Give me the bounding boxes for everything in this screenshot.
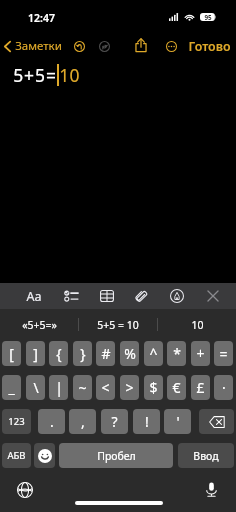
button[interactable]: } [73, 341, 92, 366]
button[interactable]: Заметки [0, 33, 66, 59]
button[interactable]: · [214, 375, 233, 400]
button[interactable]: % [120, 341, 139, 366]
staticText: + [196, 344, 205, 363]
staticText: · [222, 378, 226, 397]
staticText: 10 [191, 318, 204, 332]
staticText: = [219, 344, 228, 363]
staticText: 12:47 [28, 11, 55, 25]
button[interactable]: Format [19, 283, 49, 309]
staticText: [ [9, 344, 14, 363]
button[interactable]: Table [92, 283, 122, 309]
button[interactable]: More [160, 35, 182, 57]
button[interactable]: € [167, 375, 186, 400]
staticText: > [125, 378, 134, 397]
button[interactable]: _ [2, 375, 21, 400]
button[interactable]: \ [26, 375, 45, 400]
button[interactable]: Share [130, 34, 152, 56]
staticText: 5+5= [13, 63, 57, 87]
button[interactable]: Пробел [59, 443, 173, 468]
button[interactable]: 123 [2, 409, 31, 434]
staticText: Заметки [15, 38, 62, 54]
button[interactable]: [ [2, 341, 21, 366]
button[interactable]: АБВ [2, 443, 31, 468]
staticText: 123 [8, 415, 25, 428]
staticText: 95 [204, 13, 212, 21]
staticText: Ввод [193, 449, 219, 463]
button[interactable]: ? [101, 409, 128, 434]
staticText: ' [176, 412, 180, 431]
button[interactable]: 10 [158, 309, 236, 340]
button[interactable]: { [49, 341, 68, 366]
button[interactable]: ^ [144, 341, 163, 366]
button[interactable]: , [69, 409, 96, 434]
staticText: * [173, 344, 181, 363]
staticText: { [56, 344, 62, 363]
staticText: % [124, 344, 136, 363]
button[interactable]: $ [144, 375, 163, 400]
button[interactable]: Redo [93, 35, 115, 57]
button[interactable]: Close [198, 283, 228, 309]
staticText: . [50, 412, 54, 431]
button[interactable]: < [96, 375, 115, 400]
staticText: } [80, 344, 86, 363]
staticText: < [101, 378, 110, 397]
button[interactable]: £ [191, 375, 210, 400]
staticText: $ [149, 378, 158, 397]
staticText: , [81, 412, 85, 431]
staticText: € [172, 378, 181, 397]
staticText: 5+5 = 10 [97, 318, 139, 332]
staticText: ? [111, 412, 118, 431]
button[interactable]: . [38, 409, 65, 434]
button[interactable]: ] [26, 341, 45, 366]
staticText: 10 [59, 63, 80, 87]
button[interactable]: + [191, 341, 210, 366]
button[interactable]: Undo [68, 35, 90, 57]
staticText: «5+5=» [22, 318, 57, 332]
button[interactable]: Change keyboard [13, 478, 37, 502]
staticText: ^ [149, 344, 158, 363]
button[interactable]: Emoji [34, 443, 55, 468]
button[interactable]: Checklist [56, 283, 86, 309]
staticText: | [55, 378, 63, 397]
button[interactable]: > [120, 375, 139, 400]
button[interactable]: ~ [73, 375, 92, 400]
button[interactable]: «5+5=» [0, 309, 78, 340]
staticText: ] [33, 344, 38, 363]
button[interactable]: Markup [162, 283, 192, 309]
button[interactable]: | [49, 375, 68, 400]
button[interactable]: Ввод [178, 443, 234, 468]
button[interactable]: # [96, 341, 115, 366]
staticText: \ [33, 378, 39, 397]
button[interactable]: = [214, 341, 233, 366]
button[interactable]: Attach [126, 283, 156, 309]
button[interactable]: 5+5 = 10 [79, 309, 157, 340]
button[interactable]: Dictate [199, 477, 223, 501]
staticText: АБВ [7, 449, 26, 462]
staticText: Пробел [97, 449, 136, 463]
button[interactable]: ! [133, 409, 160, 434]
staticText: Готово [188, 38, 231, 55]
staticText: ~ [78, 378, 87, 397]
staticText: £ [196, 378, 205, 397]
button[interactable]: * [167, 341, 186, 366]
staticText: ! [145, 412, 149, 431]
button[interactable]: ' [164, 409, 191, 434]
staticText: # [101, 344, 111, 363]
button[interactable]: Backspace [199, 409, 234, 434]
button[interactable]: Готово [184, 33, 236, 59]
staticText: _ [8, 378, 15, 397]
staticText: Aa [26, 288, 42, 305]
